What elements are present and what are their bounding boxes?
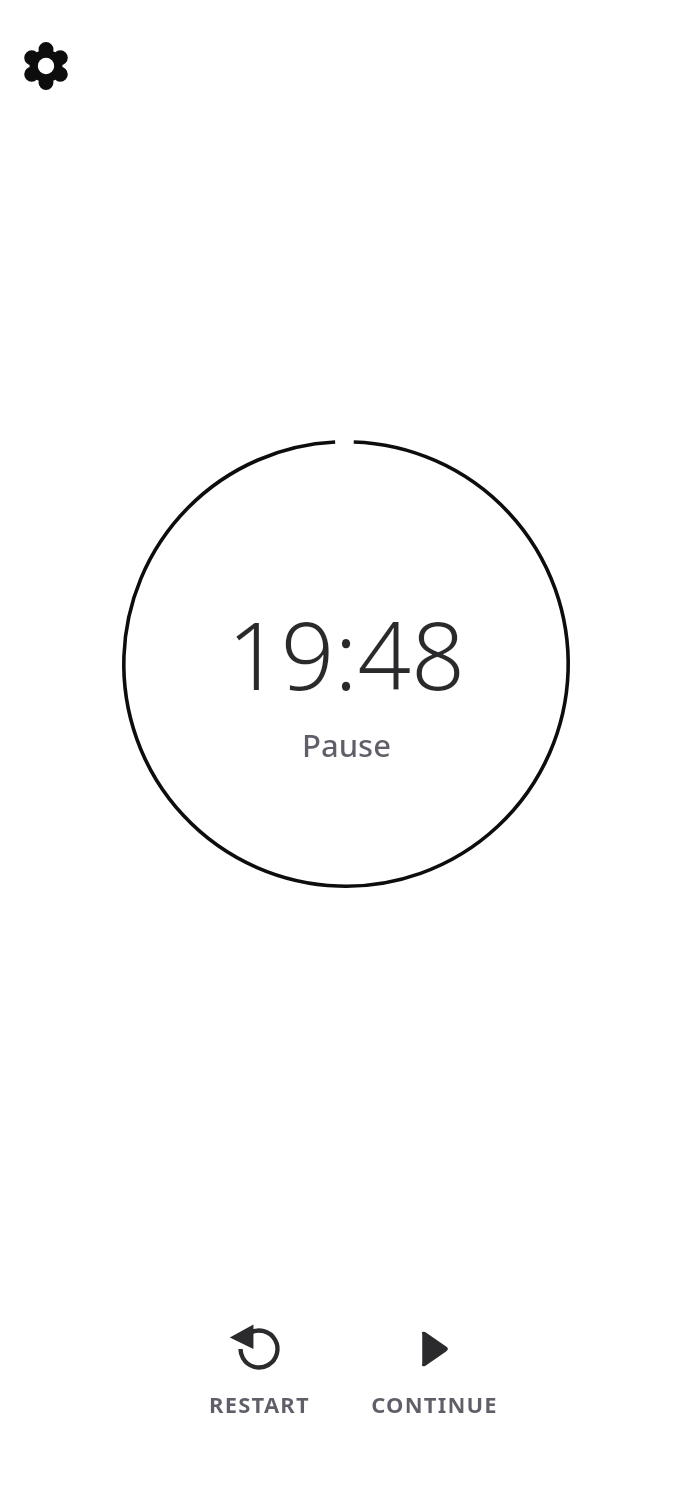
staticText: Pause xyxy=(302,724,391,766)
button[interactable]: Settings xyxy=(14,34,78,98)
staticText: 19:48 xyxy=(227,590,465,718)
button[interactable]: RESTART xyxy=(184,1310,334,1419)
staticText: RESTART xyxy=(209,1389,310,1419)
staticText: CONTINUE xyxy=(371,1389,498,1419)
button[interactable]: CONTINUE xyxy=(359,1310,509,1419)
